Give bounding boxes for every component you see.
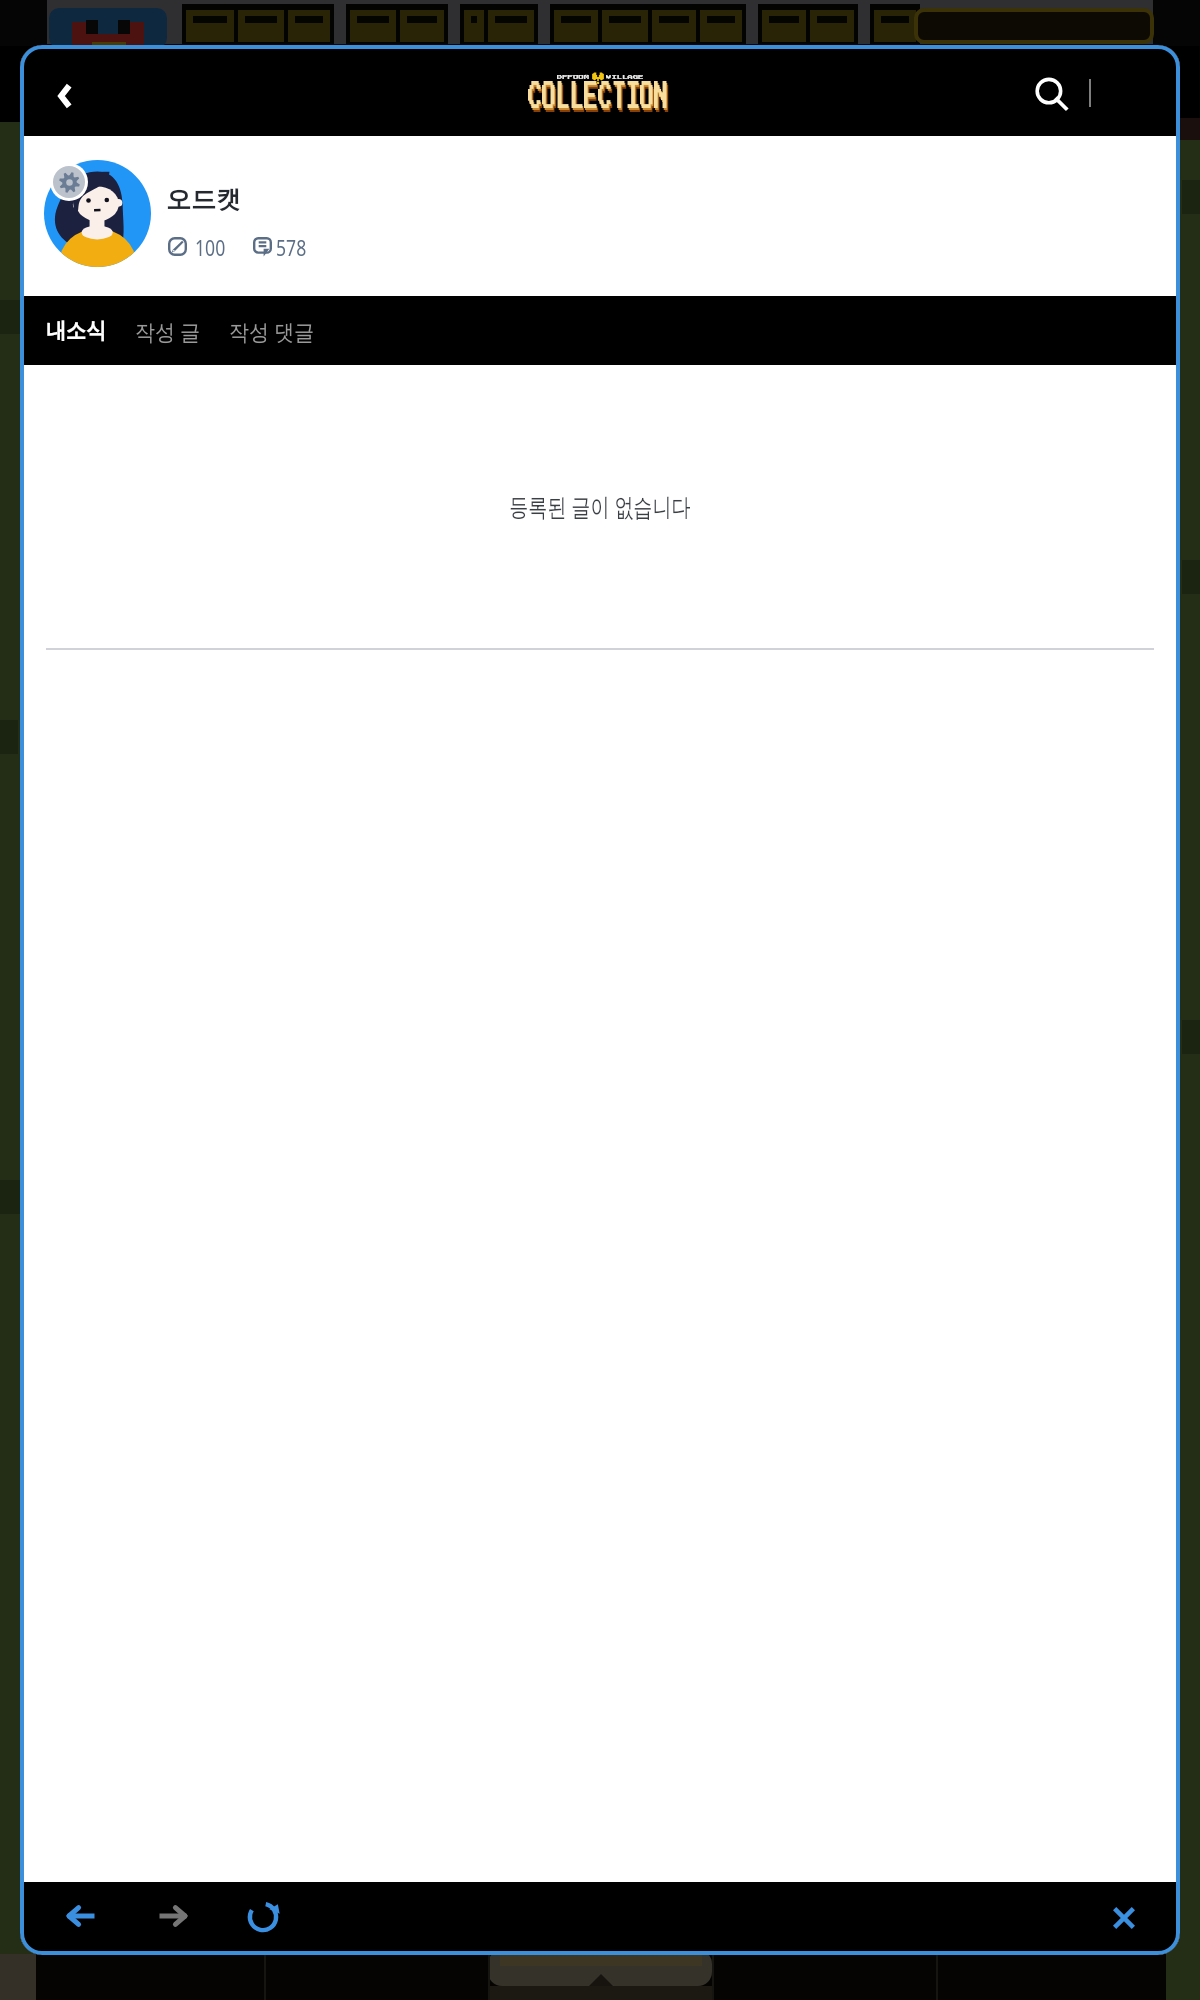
staticText: COLLECTION <box>528 82 668 112</box>
button[interactable]: Settings <box>53 166 85 198</box>
button[interactable]: Navigate back <box>53 1888 109 1944</box>
staticText: 등록된 글이 없습니다 <box>159 489 1041 523</box>
staticText: 오드캣 <box>166 184 241 215</box>
button[interactable]: Search <box>1025 68 1081 124</box>
button[interactable]: 작성 댓글 <box>218 306 334 356</box>
staticText: COLLECTION <box>529 84 669 114</box>
staticText: VILLAGE <box>606 75 644 80</box>
staticText: 578 <box>276 232 306 262</box>
button[interactable]: Reload page <box>235 1889 291 1945</box>
button[interactable]: 작성 글 <box>124 306 218 356</box>
staticText: 내소식 <box>46 317 106 345</box>
staticText: 작성 글 <box>135 316 200 346</box>
staticText: COLLECTION <box>530 86 670 116</box>
button[interactable]: Navigate forward <box>145 1888 201 1944</box>
button[interactable]: Close <box>1096 1890 1152 1946</box>
button[interactable]: Back <box>34 66 94 126</box>
staticText: 100 <box>195 232 225 262</box>
staticText: 작성 댓글 <box>229 316 314 346</box>
staticText: DFFOOM <box>557 75 590 80</box>
button[interactable]: 내소식 <box>34 307 124 355</box>
